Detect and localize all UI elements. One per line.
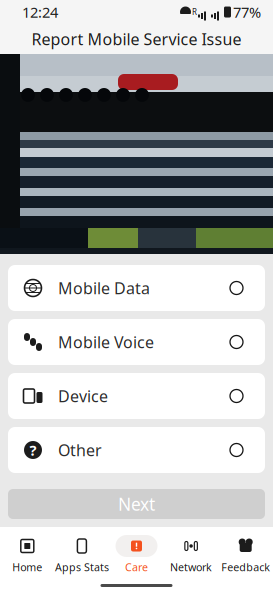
button[interactable]: Mobile Voice (8, 319, 265, 365)
staticText: 77% (233, 2, 261, 22)
button[interactable]: Device (8, 373, 265, 419)
staticText: Other (58, 439, 102, 461)
staticText: Network (170, 560, 212, 574)
staticText: Mobile Data (58, 277, 150, 299)
staticText: Apps Stats (55, 560, 109, 574)
button[interactable]: Apps Stats (55, 535, 109, 574)
button[interactable]: ? (8, 427, 265, 473)
staticText: Feedback (221, 560, 270, 574)
button[interactable]: Next (8, 489, 265, 519)
staticText: Next (118, 492, 155, 515)
button[interactable]: Home (0, 535, 55, 574)
staticText: Report Mobile Service Issue (31, 28, 241, 50)
staticText: Mobile Voice (58, 331, 154, 353)
staticText: 12:24 (22, 2, 58, 22)
button[interactable]: Care (109, 535, 164, 574)
staticText: Device (58, 385, 108, 407)
staticText: R (192, 7, 197, 17)
button[interactable]: Mobile Data (8, 265, 265, 311)
staticText: Care (125, 560, 148, 574)
staticText: Home (12, 560, 42, 574)
button[interactable]: Network (164, 535, 218, 574)
staticText: ? (29, 440, 36, 460)
button[interactable]: Feedback (218, 535, 273, 574)
